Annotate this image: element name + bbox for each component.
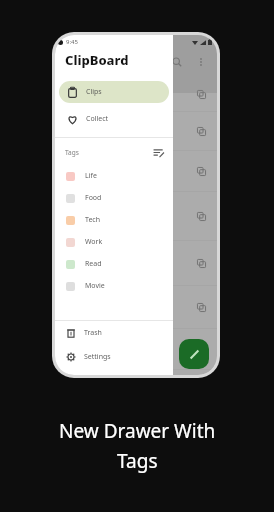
staticText: ClipBoard <box>65 51 129 69</box>
button[interactable]: Settings <box>55 345 173 369</box>
staticText: Trash <box>84 328 102 338</box>
button[interactable]: Work <box>55 231 173 253</box>
button[interactable]: Trash <box>55 321 173 345</box>
button[interactable]: Collect <box>59 108 169 130</box>
staticText: Movie <box>85 281 105 291</box>
staticText: Sed do eiusmod tempore and <box>63 166 162 176</box>
button[interactable]: Read <box>55 253 173 275</box>
staticText: 9:45 <box>66 38 78 46</box>
staticText: Quis nostrud exercit by the <box>63 253 154 263</box>
staticText: Ut labore et dolore and age magna aliqua… <box>63 201 155 221</box>
staticText: Clips <box>86 87 102 97</box>
button[interactable]: Excepteur sint occaecat. <box>55 329 217 370</box>
button[interactable]: Ut labore et dolore and age magna aliqua… <box>55 192 217 241</box>
button[interactable]: Copy <box>193 255 209 271</box>
button[interactable]: Life <box>55 165 173 187</box>
staticText: Tags <box>117 448 158 474</box>
button[interactable]: New clip <box>179 339 209 369</box>
staticText: Tags <box>65 148 79 157</box>
staticText: love #Life <box>63 224 86 231</box>
staticText: Lorem ipsum dolor flow <box>63 89 143 99</box>
button[interactable]: Search <box>167 52 187 72</box>
staticText: Read <box>85 259 102 269</box>
staticText: Collect <box>86 114 109 124</box>
staticText: work #Read <box>63 266 92 273</box>
button[interactable]: Movie <box>55 275 173 297</box>
button[interactable]: Tech <box>55 209 173 231</box>
button[interactable]: Copy <box>193 341 209 357</box>
button[interactable]: Quis nostrud exercit by the <box>55 241 217 286</box>
button[interactable]: Duis aute irure waiting for. <box>55 286 217 329</box>
staticText: Excepteur sint occaecat. <box>63 344 144 354</box>
button[interactable]: Food <box>55 187 173 209</box>
button[interactable]: Edit tags <box>152 146 165 159</box>
staticText: New Drawer With <box>59 418 216 444</box>
staticText: Life <box>85 171 97 181</box>
staticText: Tech <box>85 215 101 225</box>
button[interactable]: Sed do eiusmod tempore and <box>55 151 217 192</box>
staticText: Settings <box>84 352 111 362</box>
button[interactable]: Consectetur adipiscing now <box>55 112 217 151</box>
button[interactable]: Copy <box>193 299 209 315</box>
staticText: Work <box>85 237 103 247</box>
button[interactable]: Lorem ipsum dolor flow <box>55 77 217 112</box>
button[interactable]: Clips <box>59 81 169 103</box>
button[interactable]: More options <box>191 52 211 72</box>
button[interactable]: Copy <box>193 208 209 224</box>
staticText: Food <box>85 193 102 203</box>
button[interactable]: Copy <box>193 123 209 139</box>
button[interactable]: Copy <box>193 86 209 102</box>
button[interactable]: Copy <box>193 163 209 179</box>
